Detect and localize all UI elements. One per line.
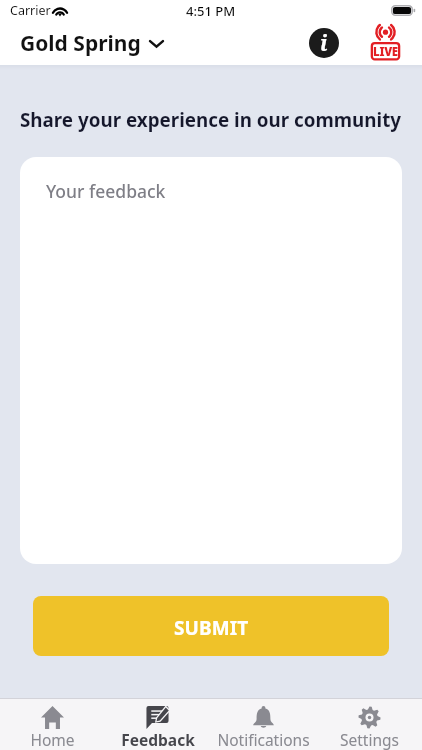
staticText: 4:51 PM: [186, 2, 236, 20]
button[interactable]: Information: [309, 28, 339, 58]
staticText: Home: [30, 729, 75, 750]
staticText: Notifications: [217, 729, 310, 750]
staticText: Gold Spring: [20, 29, 141, 58]
staticText: Your feedback: [46, 179, 166, 203]
staticText: Settings: [340, 729, 399, 750]
button[interactable]: Live broadcast: [371, 25, 400, 61]
button[interactable]: Notifications: [210, 699, 316, 750]
staticText: LIVE: [373, 44, 398, 60]
staticText: Carrier: [10, 2, 51, 19]
button[interactable]: Home: [0, 699, 105, 750]
button[interactable]: Feedback: [105, 699, 210, 750]
button[interactable]: Settings: [316, 699, 422, 750]
staticText: Share your experience in our community: [20, 107, 402, 133]
staticText: SUBMIT: [174, 615, 249, 641]
button[interactable]: SUBMIT: [33, 596, 389, 656]
button[interactable]: Gold Spring: [20, 29, 165, 58]
staticText: i: [320, 29, 328, 58]
button[interactable]: Your feedback: [20, 157, 402, 564]
staticText: Feedback: [121, 729, 195, 750]
